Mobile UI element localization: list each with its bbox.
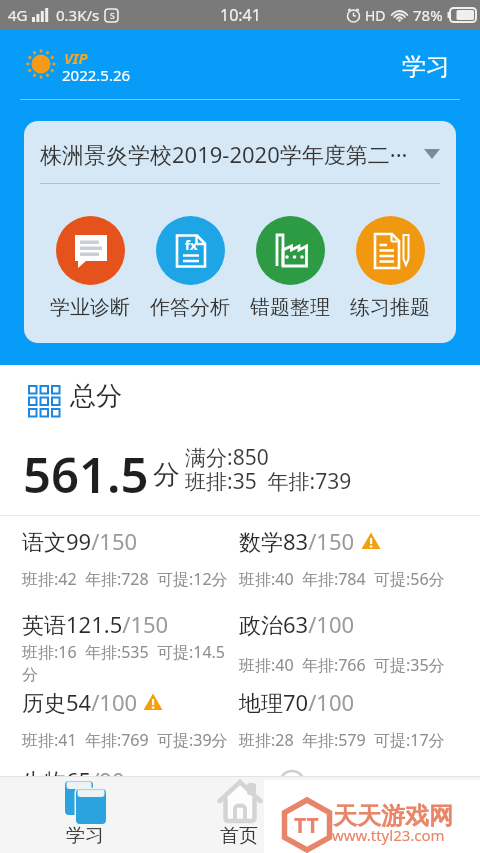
staticText: HD	[365, 6, 386, 25]
staticText: 班排:40 年排:766 可提:35分	[239, 654, 445, 676]
button[interactable]: 错题整理	[240, 216, 340, 320]
staticText: 总分	[70, 380, 122, 413]
staticText: 班排:16 年排:535 可提:14.5分	[22, 641, 234, 685]
staticText: 561.5	[23, 441, 149, 508]
staticText: 学习	[66, 824, 104, 848]
button[interactable]: fx	[140, 216, 240, 320]
staticText: 政治63/100	[239, 609, 355, 639]
staticText: 班排:42 年排:728 可提:12分	[22, 568, 228, 590]
staticText: 2022.5.26	[62, 65, 131, 85]
staticText: 班排:35 年排:739	[185, 467, 352, 496]
staticText: 满分:850	[185, 443, 269, 472]
staticText: 语文99/150	[22, 526, 138, 556]
staticText: 学业诊断	[50, 295, 130, 320]
staticText: 班排:40 年排:784 可提:56分	[239, 568, 445, 590]
staticText: fx	[185, 236, 198, 254]
button[interactable]: 学习	[49, 776, 121, 853]
staticText: 10:41	[220, 4, 261, 26]
staticText: 班排:28 年排:579 可提:17分	[239, 729, 445, 751]
staticText: 班排:41 年排:769 可提:39分	[22, 729, 228, 751]
staticText: 0.3K/s	[56, 5, 100, 25]
button[interactable]: 练习推题	[340, 216, 440, 320]
button[interactable]: 首页	[203, 776, 275, 853]
staticText: 地理70/100	[239, 687, 355, 717]
staticText: 学习	[402, 52, 450, 82]
staticText: 株洲景炎学校2019-2020学年度第二···	[40, 139, 408, 169]
staticText: s	[110, 8, 115, 22]
staticText: 作答分析	[150, 295, 230, 320]
staticText: www.ttyl23.com	[332, 825, 445, 845]
staticText: 分	[153, 458, 180, 492]
staticText: 4G	[8, 5, 28, 25]
staticText: TT	[294, 811, 319, 840]
button[interactable]: 学习	[394, 44, 458, 90]
button[interactable]: 学业诊断	[40, 216, 140, 320]
staticText: 数学83/150	[239, 526, 355, 556]
staticText: 生物65/90	[22, 765, 125, 795]
button[interactable]: 株洲景炎学校2019-2020学年度第二···	[40, 139, 440, 169]
staticText: VIP	[64, 48, 88, 68]
staticText: 天天游戏网	[333, 801, 453, 831]
staticText: 首页	[220, 824, 258, 848]
staticText: 练习推题	[350, 295, 430, 320]
staticText: 错题整理	[250, 295, 330, 320]
staticText: 历史54/100	[22, 687, 138, 717]
staticText: 英语121.5/150	[22, 609, 169, 639]
staticText: 78%	[413, 5, 443, 25]
